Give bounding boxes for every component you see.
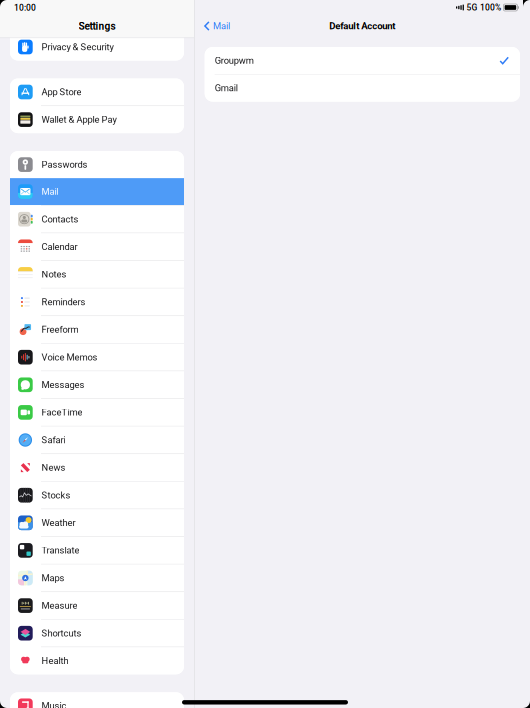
button[interactable]: Wallet & Apple Pay	[10, 106, 184, 133]
staticText: Freeform	[41, 324, 78, 335]
staticText: Music	[41, 700, 66, 708]
button[interactable]: App Store	[10, 78, 184, 105]
staticText: Reminders	[41, 296, 85, 307]
button[interactable]: Gmail	[205, 75, 520, 102]
button[interactable]: Safari	[10, 426, 184, 453]
staticText: 100%	[480, 2, 501, 12]
button[interactable]: Mail	[10, 178, 184, 205]
staticText: Measure	[41, 600, 77, 611]
staticText: Privacy & Security	[41, 41, 113, 52]
button[interactable]: Translate	[10, 537, 184, 564]
button[interactable]: Freeform	[10, 316, 184, 343]
staticText: Wallet & Apple Pay	[41, 114, 116, 125]
button[interactable]: Health	[10, 647, 184, 674]
staticText: News	[41, 462, 65, 473]
button[interactable]: Shortcuts	[10, 620, 184, 647]
staticText: Shortcuts	[41, 628, 81, 639]
staticText: Notes	[41, 269, 66, 280]
staticText: Settings	[78, 20, 115, 32]
staticText: Maps	[41, 572, 64, 583]
staticText: Groupwm	[215, 55, 254, 66]
button[interactable]: Voice Memos	[10, 344, 184, 371]
button[interactable]: Reminders	[10, 288, 184, 315]
button[interactable]: Mail	[195, 15, 236, 37]
staticText: 5G	[466, 2, 477, 12]
button[interactable]: Music	[10, 692, 184, 708]
button[interactable]: Weather	[10, 509, 184, 536]
staticText: Safari	[41, 434, 65, 445]
button[interactable]: Groupwm	[205, 47, 520, 74]
button[interactable]: News	[10, 454, 184, 481]
button[interactable]: Contacts	[10, 206, 184, 233]
button[interactable]: Calendar	[10, 233, 184, 260]
button[interactable]: Passwords	[10, 151, 184, 178]
staticText: Mail	[41, 186, 58, 197]
staticText: Stocks	[41, 490, 70, 501]
staticText: FaceTime	[41, 407, 82, 418]
staticText: 10:00	[14, 3, 36, 13]
staticText: Voice Memos	[41, 352, 97, 363]
button[interactable]: Stocks	[10, 482, 184, 509]
staticText: Default Account	[329, 20, 395, 32]
button[interactable]: Measure	[10, 592, 184, 619]
staticText: Contacts	[41, 214, 78, 225]
staticText: Mail	[213, 20, 230, 31]
button[interactable]: FaceTime	[10, 399, 184, 426]
staticText: App Store	[41, 86, 81, 97]
staticText: Health	[41, 655, 68, 666]
button[interactable]: Privacy & Security	[10, 33, 184, 60]
staticText: Passwords	[41, 159, 87, 170]
staticText: Weather	[41, 517, 75, 528]
staticText: Translate	[41, 545, 79, 556]
staticText: Gmail	[215, 83, 238, 93]
button[interactable]: Messages	[10, 371, 184, 398]
staticText: Messages	[41, 379, 84, 390]
staticText: Calendar	[41, 241, 77, 252]
button[interactable]: Maps	[10, 564, 184, 591]
button[interactable]: Notes	[10, 261, 184, 288]
button[interactable]: Search	[10, 6, 184, 33]
